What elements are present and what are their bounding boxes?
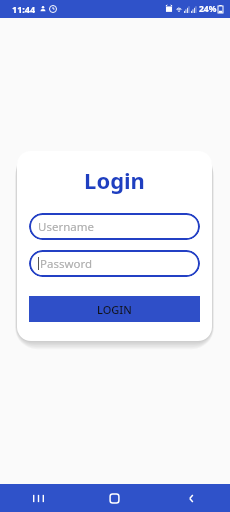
staticText: Password (40, 256, 93, 272)
staticText: 24% (199, 3, 217, 15)
button[interactable]: Recent apps (0, 484, 76, 512)
staticText: Login (29, 165, 200, 195)
staticText: 11:44 (12, 3, 36, 15)
button[interactable]: Back (153, 484, 230, 512)
button[interactable]: Username (29, 213, 200, 240)
staticText: Username (38, 219, 94, 235)
button[interactable]: LOGIN (29, 296, 200, 322)
button[interactable]: Password (29, 250, 200, 277)
button[interactable]: Home (76, 484, 153, 512)
staticText: LOGIN (97, 302, 132, 317)
